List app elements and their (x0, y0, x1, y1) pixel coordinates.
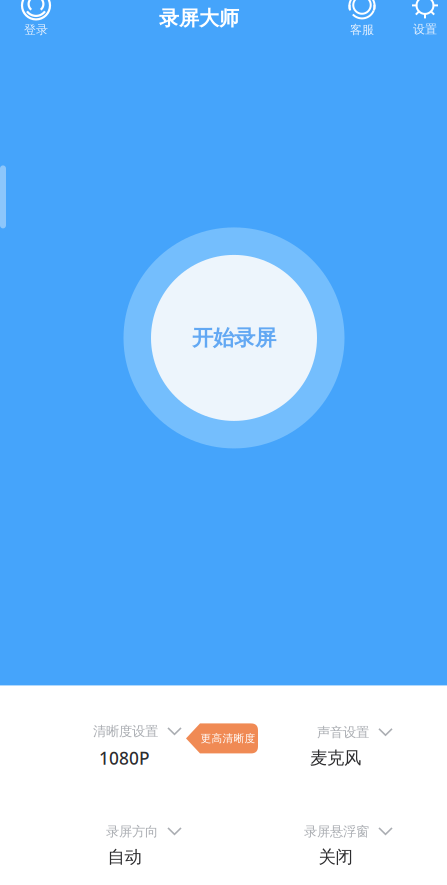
button[interactable]: Sign in (14, 0, 58, 37)
staticText: 录屏大师 (159, 6, 239, 31)
staticText: 开始录屏 (192, 325, 276, 351)
button[interactable]: 录屏方向 (41, 823, 208, 868)
staticText: 麦克风 (310, 747, 361, 769)
staticText: 自动 (107, 846, 141, 868)
staticText: 1080P (99, 746, 150, 769)
staticText: 清晰度设置 (93, 723, 158, 740)
staticText: 录屏方向 (106, 823, 158, 840)
button[interactable]: Settings (403, 0, 447, 37)
button[interactable]: 声音设置 (252, 724, 419, 769)
staticText: 客服 (350, 22, 374, 37)
staticText: 关闭 (318, 846, 352, 868)
staticText: 登录 (24, 22, 48, 37)
button[interactable]: Customer service (340, 0, 384, 37)
button[interactable]: 清晰度设置 (41, 723, 208, 769)
staticText: 录屏悬浮窗 (304, 823, 369, 840)
button[interactable]: 录屏悬浮窗 (252, 823, 419, 868)
staticText: 设置 (413, 22, 437, 37)
staticText: 更高清晰度 (200, 732, 255, 745)
staticText: 声音设置 (317, 724, 369, 740)
button[interactable]: 开始录屏 (123, 227, 344, 448)
